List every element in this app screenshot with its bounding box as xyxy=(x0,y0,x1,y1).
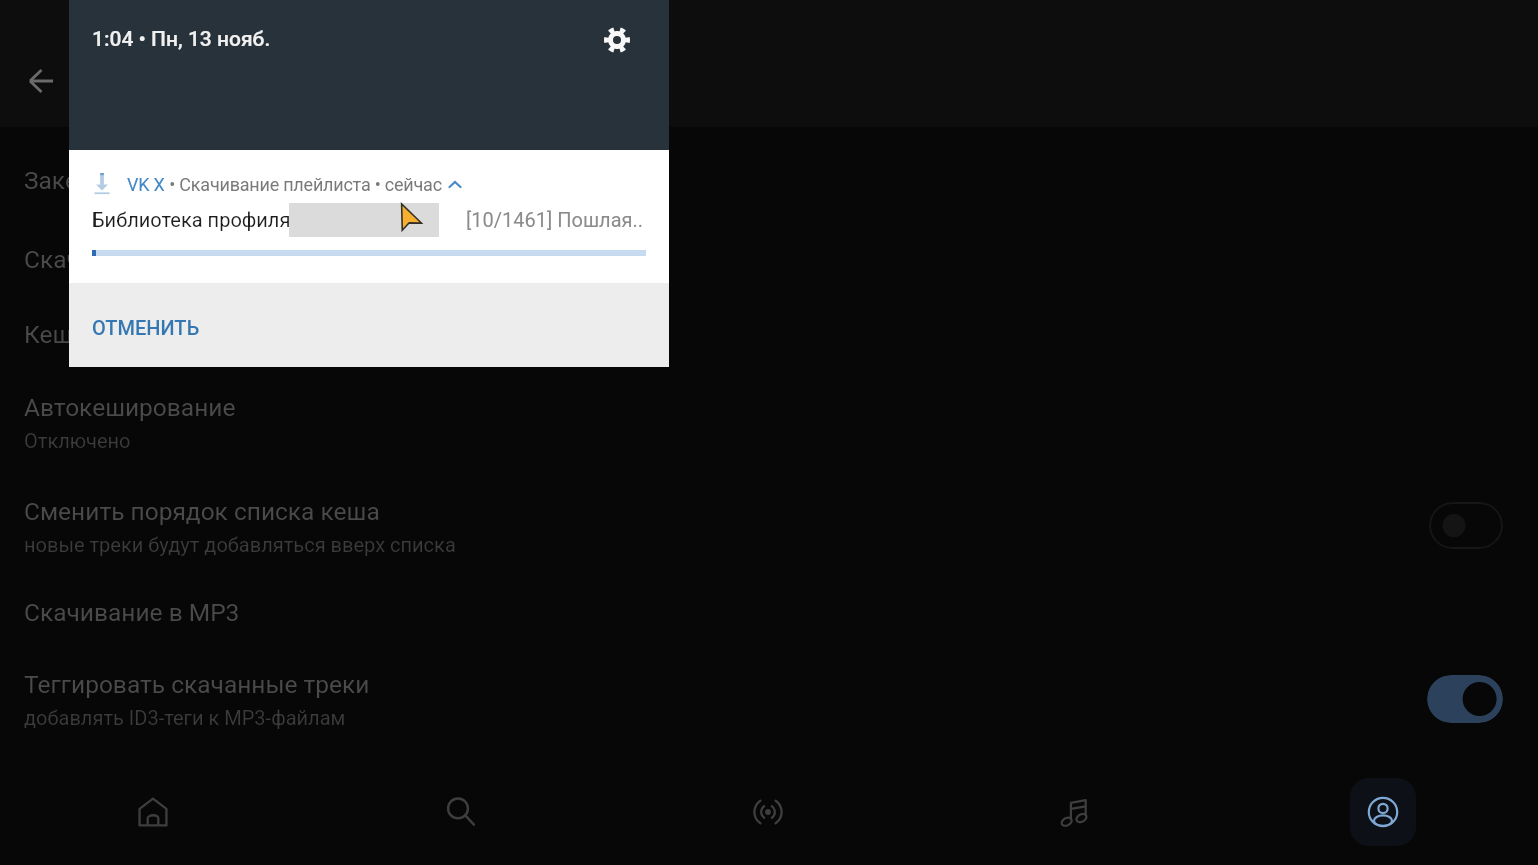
button[interactable]: Скачивание в MP3 xyxy=(0,577,1538,649)
staticText: новые треки будут добавляться вверх спис… xyxy=(24,533,456,556)
staticText: 1:04 • Пн, 13 нояб. xyxy=(92,27,271,52)
button[interactable]: Кеширование треков xyxy=(0,299,1538,371)
button[interactable]: Radio xyxy=(708,762,828,862)
staticText: Скачивание в MP3 xyxy=(24,598,240,627)
staticText: Отключено xyxy=(24,429,131,452)
staticText: ОТМЕНИТЬ xyxy=(92,316,200,339)
staticText: Сменить порядок списка кеша xyxy=(24,497,380,526)
staticText: [10/1461] Пошлая.. xyxy=(466,208,644,231)
button[interactable]: ОТМЕНИТЬ xyxy=(69,283,669,367)
button[interactable]: Music xyxy=(1015,762,1135,862)
staticText: Скачивание плейлистов xyxy=(24,245,305,274)
button[interactable]: Settings xyxy=(593,16,641,64)
staticText: Библиотека профиля xyxy=(92,208,291,231)
staticText: Кеширование треков xyxy=(24,320,269,349)
button[interactable]: Switch off xyxy=(1429,502,1503,549)
button[interactable]: Сменить порядок списка кеша xyxy=(0,476,1538,580)
button[interactable]: Search xyxy=(401,762,521,862)
button[interactable]: Теггировать скачанные треки xyxy=(0,649,1538,753)
button[interactable]: Profile xyxy=(1323,762,1443,862)
button[interactable]: Скачивание плейлистов xyxy=(0,224,1538,296)
button[interactable]: Home xyxy=(93,762,213,862)
button[interactable]: Закешированные треки xyxy=(0,145,1538,217)
button[interactable]: Автокеширование xyxy=(0,372,1538,476)
button[interactable]: Back xyxy=(16,56,66,106)
staticText: • Скачивание плейлиста • сейчас xyxy=(165,174,442,195)
staticText: VK X xyxy=(127,174,165,195)
staticText: Закешированные треки xyxy=(24,166,300,195)
button[interactable]: Switch on xyxy=(1427,675,1503,723)
staticText: Теггировать скачанные треки xyxy=(24,670,370,699)
staticText: добавлять ID3-теги к MP3-файлам xyxy=(24,706,346,729)
staticText: Автокеширование xyxy=(24,393,236,422)
